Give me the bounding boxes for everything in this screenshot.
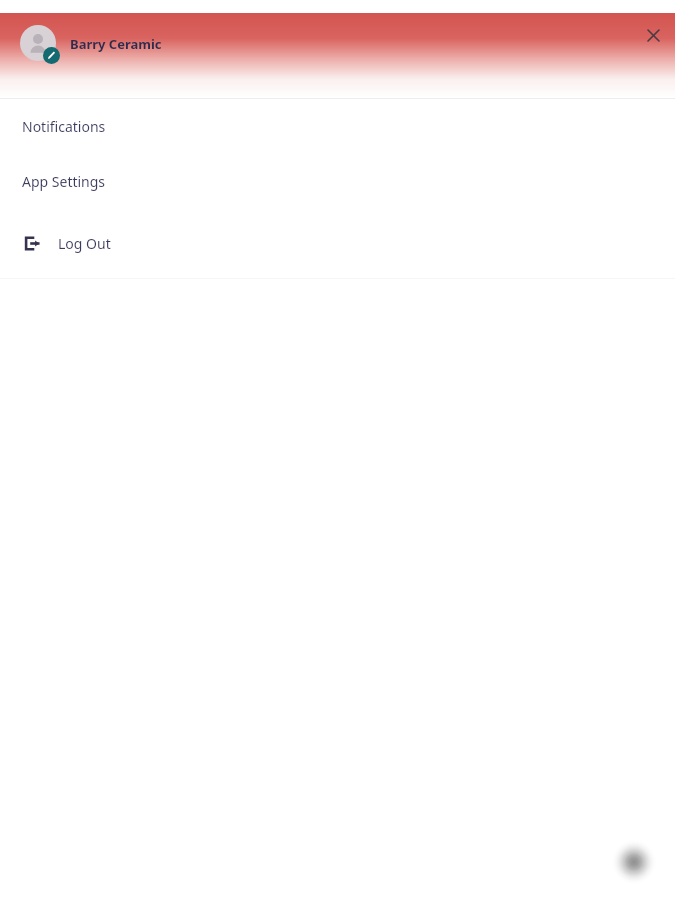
button[interactable]: Close <box>639 21 667 49</box>
button[interactable]: Notifications <box>0 99 675 154</box>
button[interactable]: Action button <box>608 836 660 888</box>
button[interactable]: App Settings <box>0 154 675 209</box>
staticText: Notifications <box>22 117 106 136</box>
staticText: App Settings <box>22 172 106 191</box>
staticText: Barry Ceramic <box>70 35 162 53</box>
staticText: Log Out <box>58 234 111 253</box>
button[interactable]: Edit profile photo <box>20 25 58 63</box>
button[interactable]: Log Out <box>0 209 675 278</box>
